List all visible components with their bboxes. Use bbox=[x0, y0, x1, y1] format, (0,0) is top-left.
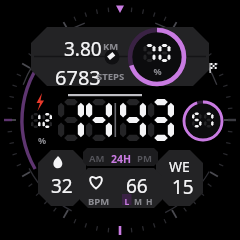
button[interactable]: Watch face bbox=[0, 0, 240, 240]
